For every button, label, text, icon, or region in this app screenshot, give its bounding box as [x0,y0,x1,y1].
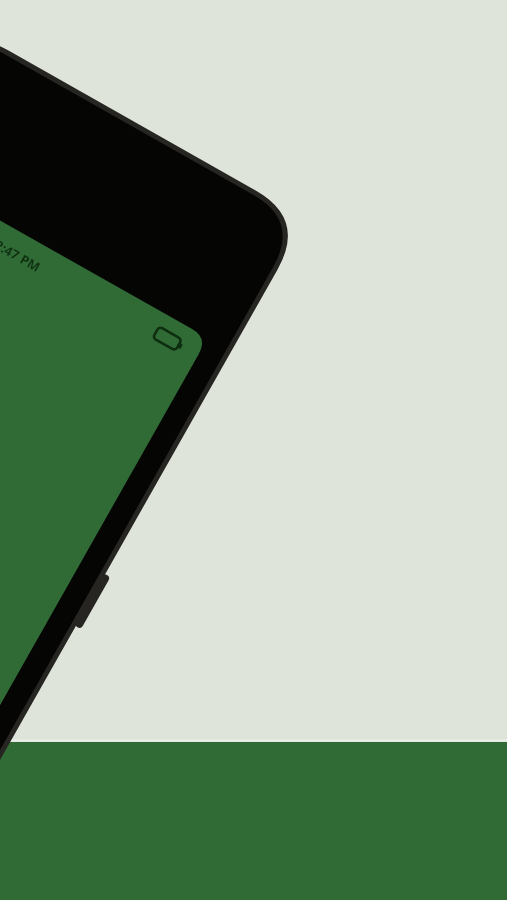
button[interactable]: Photo of phone running the app [0,0,507,900]
